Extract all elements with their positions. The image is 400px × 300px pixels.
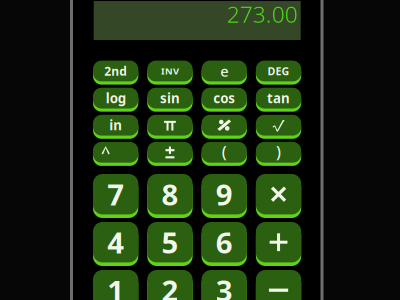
button[interactable]: pi [147, 115, 193, 139]
button[interactable]: 7 [93, 174, 138, 218]
staticText: DEG [268, 64, 290, 78]
staticText: ) [276, 141, 281, 162]
button[interactable]: percent [202, 115, 247, 139]
button[interactable]: 4 [93, 222, 138, 266]
button[interactable]: ) [256, 142, 301, 166]
staticText: sin [160, 89, 180, 107]
staticText: 3 [216, 271, 233, 300]
button[interactable]: INV [147, 61, 193, 85]
button[interactable]: cos [202, 88, 247, 112]
button[interactable]: 2nd [93, 61, 138, 85]
staticText: in [109, 116, 122, 134]
button[interactable]: DEG [256, 61, 301, 85]
button[interactable]: 6 [202, 222, 247, 266]
button[interactable]: log [93, 88, 138, 112]
staticText: log [106, 89, 126, 107]
staticText: 6 [216, 223, 233, 262]
staticText: 2nd [104, 63, 127, 79]
staticText: 7 [107, 175, 124, 214]
staticText: INV [161, 65, 179, 77]
button[interactable]: 1 [93, 270, 138, 300]
staticText: ( [222, 141, 227, 162]
button[interactable]: 5 [147, 222, 193, 266]
button[interactable]: 3 [202, 270, 247, 300]
staticText: 273.00 [227, 0, 298, 29]
button[interactable]: e [202, 61, 247, 85]
button[interactable]: add [256, 222, 301, 266]
button[interactable]: subtract [256, 270, 301, 300]
staticText: 5 [161, 223, 178, 262]
button[interactable]: tan [256, 88, 301, 112]
button[interactable]: plus minus [147, 142, 193, 166]
button[interactable]: 8 [147, 174, 193, 218]
staticText: 8 [161, 175, 178, 214]
staticText: e [220, 61, 228, 81]
button[interactable]: ( [202, 142, 247, 166]
staticText: tan [267, 89, 290, 107]
staticText: 1 [107, 271, 124, 300]
button[interactable]: power [93, 142, 138, 166]
staticText: 9 [216, 175, 233, 214]
staticText: 2 [161, 271, 178, 300]
staticText: 4 [107, 223, 124, 262]
button[interactable]: in [93, 115, 138, 139]
button[interactable]: square root [256, 115, 301, 139]
button[interactable]: sin [147, 88, 193, 112]
button[interactable]: 2 [147, 270, 193, 300]
button[interactable]: multiply [256, 174, 301, 218]
staticText: cos [213, 89, 235, 107]
button[interactable]: 9 [202, 174, 247, 218]
